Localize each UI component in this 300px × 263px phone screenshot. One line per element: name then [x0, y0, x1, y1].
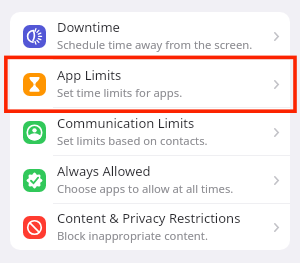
- other: Content & Privacy Restrictions: [23, 216, 46, 239]
- staticText: Always Allowed: [57, 162, 151, 180]
- other: Communication Limits: [23, 121, 46, 144]
- button[interactable]: Always Allowed: [10, 156, 290, 204]
- staticText: Schedule time away from the screen.: [57, 37, 253, 52]
- staticText: Content & Privacy Restrictions: [57, 209, 241, 227]
- staticText: Set time limits for apps.: [57, 85, 183, 100]
- button[interactable]: App Limits: [10, 60, 290, 108]
- staticText: Communication Limits: [57, 114, 195, 132]
- staticText: App Limits: [57, 66, 122, 84]
- staticText: Block inappropriate content.: [57, 228, 208, 243]
- staticText: Choose apps to allow at all times.: [57, 181, 234, 196]
- other: Downtime: [23, 25, 46, 48]
- button[interactable]: Communication Limits: [10, 108, 290, 156]
- staticText: Set limits based on contacts.: [57, 133, 208, 148]
- button[interactable]: Downtime: [10, 12, 290, 60]
- button[interactable]: Content & Privacy Restrictions: [10, 204, 290, 250]
- staticText: Downtime: [57, 18, 120, 36]
- other: App Limits: [23, 73, 46, 96]
- other: Always Allowed: [23, 169, 46, 192]
